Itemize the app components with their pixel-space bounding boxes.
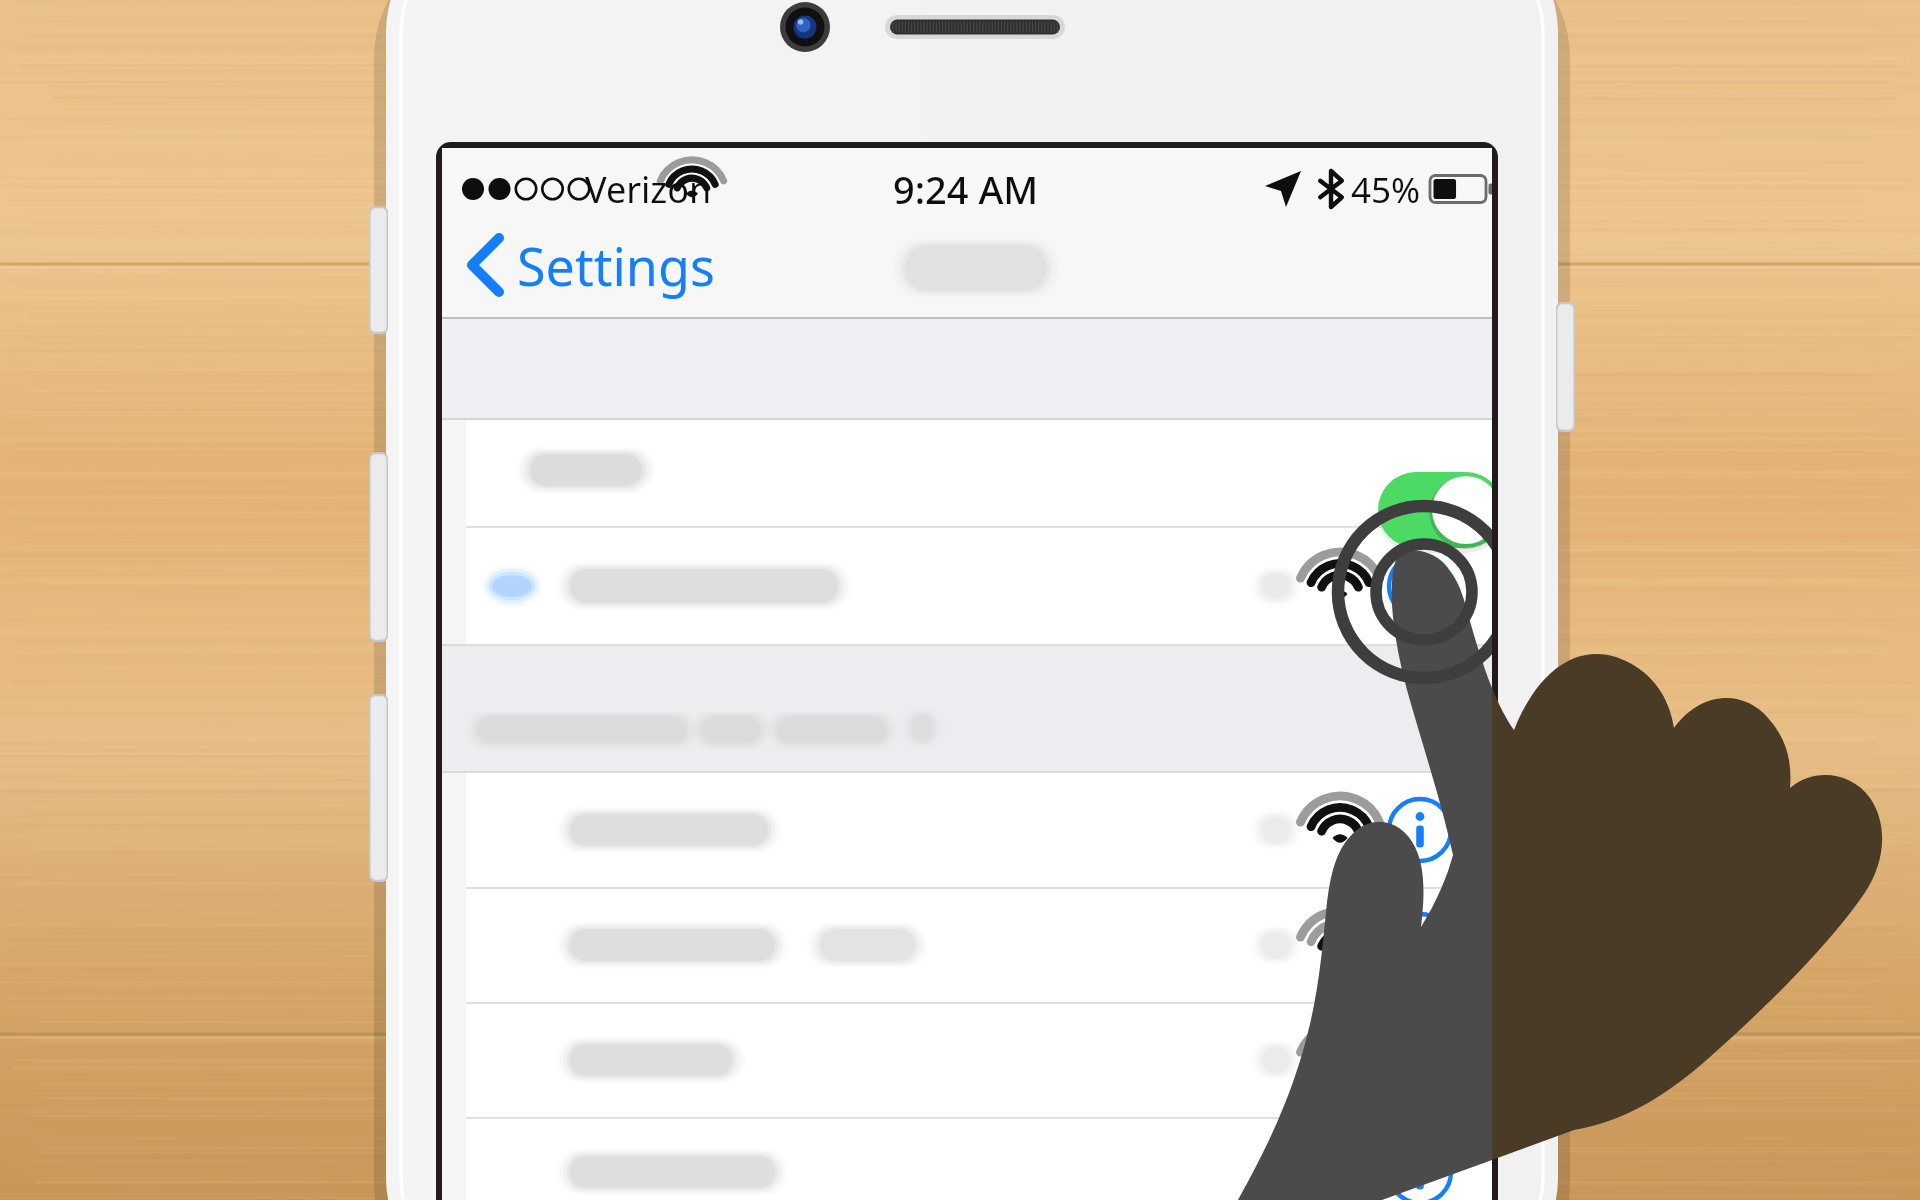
- button[interactable]: Network info: [1385, 910, 1455, 980]
- button[interactable]: Network info: [1385, 794, 1455, 864]
- button[interactable]: Back to Settings: [455, 226, 625, 306]
- button[interactable]: Wi-Fi network 3: [466, 888, 1492, 1003]
- staticText: Settings: [517, 230, 715, 301]
- button[interactable]: Wi-Fi network 2: [466, 772, 1492, 888]
- button[interactable]: Network info: [1385, 549, 1455, 619]
- button[interactable]: Network info: [1385, 1140, 1455, 1200]
- button[interactable]: Wi-Fi network 4: [466, 1003, 1492, 1118]
- button[interactable]: Wi-Fi network 1: [466, 527, 1492, 645]
- button[interactable]: Wi-Fi toggle: [466, 420, 1492, 527]
- button[interactable]: Wi-Fi network 5: [466, 1118, 1492, 1200]
- staticText: 9:24 AM: [893, 163, 1039, 215]
- staticText: Verizon: [585, 165, 712, 214]
- staticText: 45%: [1351, 166, 1421, 214]
